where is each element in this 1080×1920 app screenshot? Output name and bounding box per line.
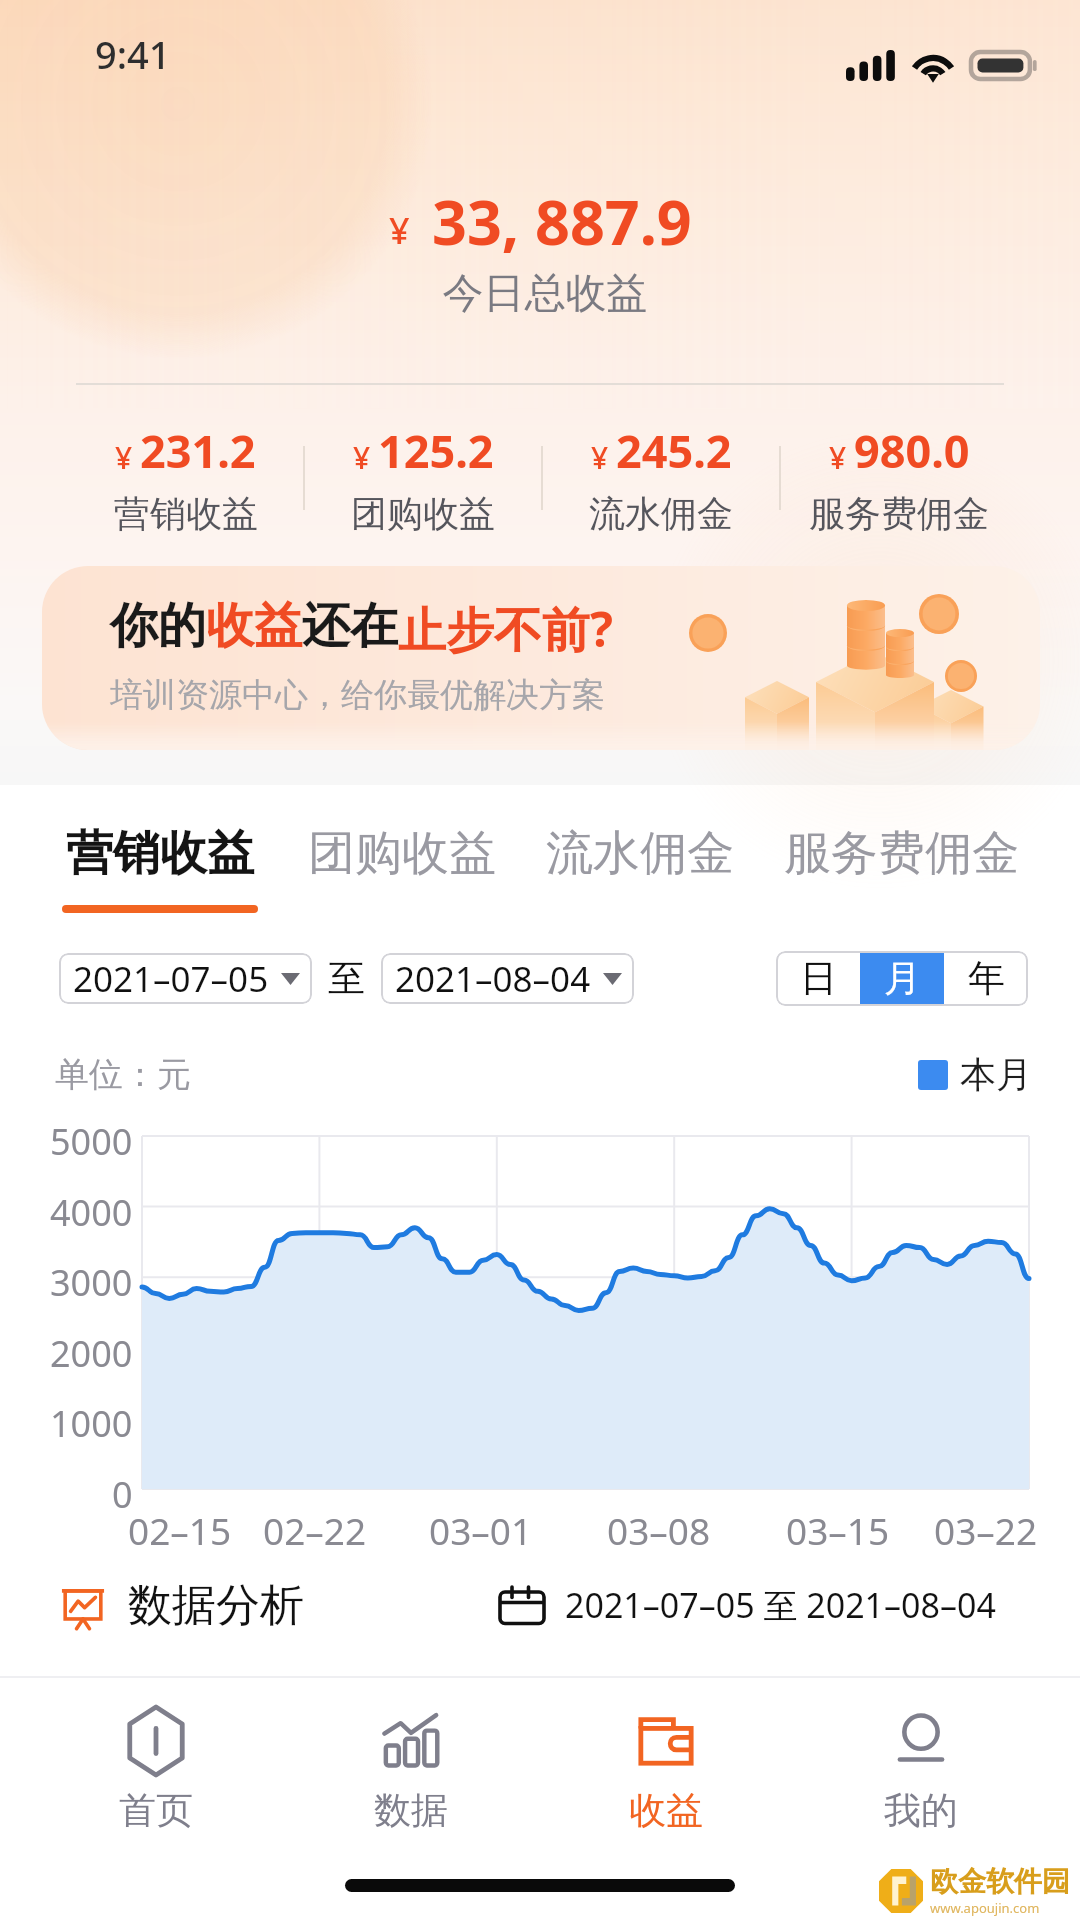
staticText: 日 bbox=[800, 955, 837, 1002]
staticText: 收益 bbox=[629, 1787, 703, 1834]
staticText: ¥ bbox=[115, 437, 133, 478]
button[interactable]: 月 bbox=[860, 951, 944, 1006]
staticText: 3000 bbox=[50, 1258, 133, 1307]
button[interactable]: 2021–07–05 bbox=[59, 953, 312, 1004]
staticText: 245.2 bbox=[616, 420, 732, 481]
button[interactable]: ¥ bbox=[305, 420, 541, 536]
button[interactable]: ¥ bbox=[781, 420, 1017, 536]
button[interactable]: 日 bbox=[776, 951, 860, 1006]
staticText: ¥ bbox=[591, 437, 609, 478]
button[interactable]: 首页 bbox=[28, 1700, 283, 1852]
button[interactable]: 营销收益 bbox=[37, 818, 283, 919]
staticText: 03–22 bbox=[934, 1505, 1038, 1555]
button[interactable]: 培训资源中心 banner bbox=[42, 566, 1040, 750]
staticText: 02–22 bbox=[263, 1505, 367, 1555]
staticText: 团购收益 bbox=[351, 491, 495, 536]
staticText: 0 bbox=[112, 1470, 133, 1519]
staticText: 还在 bbox=[302, 596, 398, 656]
staticText: 至 bbox=[328, 955, 365, 1002]
staticText: 营销收益 bbox=[114, 491, 258, 536]
staticText: 团购收益 bbox=[308, 824, 496, 883]
button[interactable]: 流水佣金 bbox=[521, 818, 759, 919]
staticText: 980.0 bbox=[854, 420, 970, 481]
staticText: 03–01 bbox=[429, 1505, 533, 1555]
button[interactable]: 2021–08–04 bbox=[381, 953, 634, 1004]
staticText: 9:41 bbox=[95, 28, 171, 80]
staticText: 4000 bbox=[50, 1188, 133, 1237]
staticText: 03–08 bbox=[607, 1505, 711, 1555]
staticText: 营销收益 bbox=[66, 824, 254, 883]
button[interactable]: 本月图例 bbox=[918, 1052, 1032, 1097]
button[interactable]: 收益 bbox=[538, 1700, 793, 1852]
staticText: ¥ bbox=[389, 206, 410, 255]
button[interactable]: 服务费佣金 bbox=[759, 818, 1044, 919]
staticText: 数据 bbox=[374, 1787, 448, 1834]
staticText: www.apoujin.com bbox=[930, 1899, 1040, 1917]
button[interactable]: ¥ bbox=[68, 420, 303, 536]
staticText: 231.2 bbox=[140, 420, 256, 481]
staticText: 月 bbox=[884, 955, 921, 1002]
button[interactable]: ¥ bbox=[543, 420, 779, 536]
staticText: 欧金软件园 bbox=[930, 1864, 1070, 1899]
staticText: 2021–07–05 至 2021–08–04 bbox=[565, 1582, 996, 1628]
staticText: 流水佣金 bbox=[589, 491, 733, 536]
staticText: 数据分析 bbox=[128, 1578, 304, 1633]
staticText: 收益 bbox=[206, 596, 302, 656]
staticText: 03–15 bbox=[786, 1505, 890, 1555]
staticText: 年 bbox=[968, 955, 1005, 1002]
staticText: 止步不前? bbox=[398, 596, 613, 662]
staticText: 首页 bbox=[119, 1787, 193, 1834]
staticText: 服务费佣金 bbox=[809, 491, 989, 536]
staticText: ¥ bbox=[829, 437, 847, 478]
staticText: 5000 bbox=[50, 1117, 133, 1166]
staticText: 服务费佣金 bbox=[784, 824, 1019, 883]
button[interactable]: 2021–07–05 至 2021–08–04 bbox=[497, 1580, 996, 1630]
staticText: 02–15 bbox=[128, 1505, 232, 1555]
staticText: 2021–07–05 bbox=[73, 955, 269, 1003]
staticText: 125.2 bbox=[378, 420, 494, 481]
button[interactable]: 团购收益 bbox=[283, 818, 521, 919]
staticText: 1000 bbox=[50, 1399, 133, 1448]
button[interactable]: 数据 bbox=[283, 1700, 538, 1852]
staticText: 今日总收益 bbox=[10, 268, 1080, 320]
staticText: 33, 887.9 bbox=[432, 180, 692, 263]
staticText: 流水佣金 bbox=[546, 824, 734, 883]
button[interactable]: 年 bbox=[944, 951, 1028, 1006]
staticText: 培训资源中心，给你最优解决方案 bbox=[110, 674, 605, 716]
button[interactable]: 数据分析 bbox=[56, 1578, 304, 1633]
staticText: 2000 bbox=[50, 1329, 133, 1378]
staticText: 单位：元 bbox=[55, 1053, 191, 1096]
staticText: 2021–08–04 bbox=[395, 955, 591, 1003]
button[interactable]: 我的 bbox=[793, 1700, 1048, 1852]
staticText: ¥ bbox=[353, 437, 371, 478]
staticText: 我的 bbox=[884, 1787, 958, 1834]
staticText: 你的 bbox=[110, 596, 206, 656]
staticText: 本月 bbox=[960, 1052, 1032, 1097]
